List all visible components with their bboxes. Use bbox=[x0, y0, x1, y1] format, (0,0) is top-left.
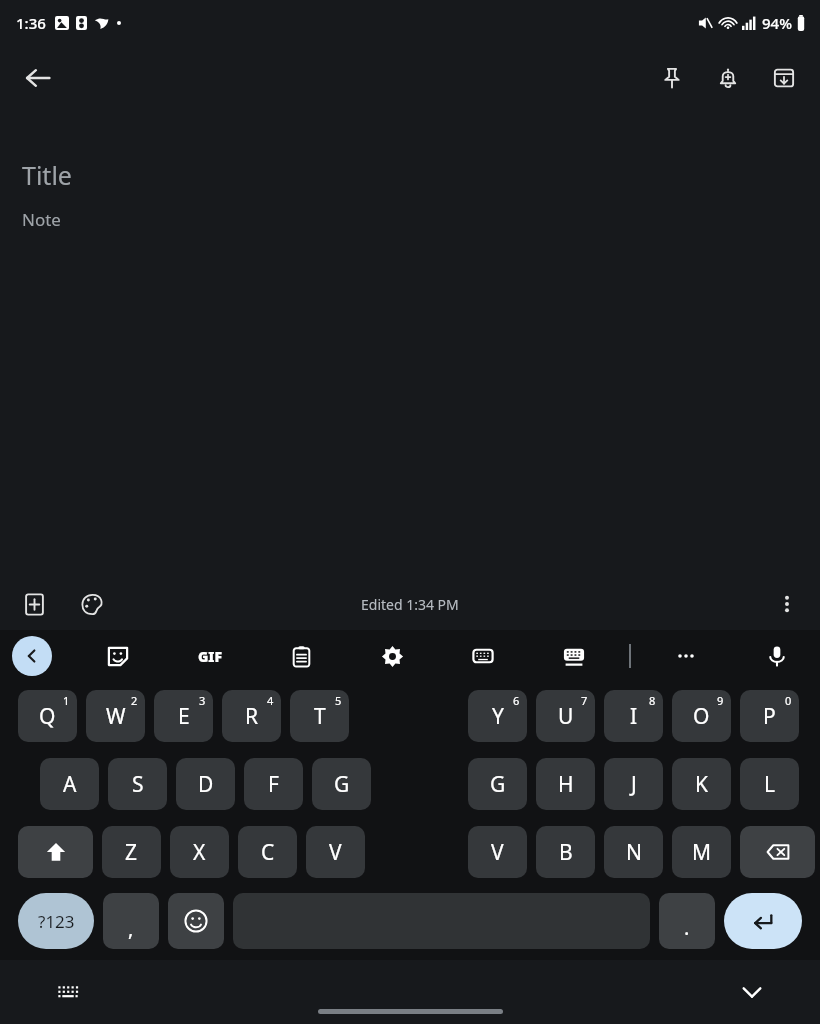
button[interactable]: G bbox=[312, 758, 371, 810]
button[interactable]: Stickers bbox=[96, 634, 140, 678]
staticText: 2 bbox=[131, 693, 138, 708]
staticText: 1 bbox=[63, 693, 70, 708]
staticText: Title bbox=[22, 158, 72, 192]
button[interactable]: N bbox=[604, 826, 663, 878]
staticText: 7 bbox=[581, 693, 588, 708]
button[interactable]: Backspace bbox=[740, 826, 815, 878]
button[interactable]: Z bbox=[102, 826, 161, 878]
button[interactable]: O bbox=[672, 690, 731, 742]
staticText: F bbox=[268, 770, 279, 799]
button[interactable]: W bbox=[86, 690, 145, 742]
staticText: D bbox=[198, 770, 214, 799]
button[interactable]: E bbox=[154, 690, 213, 742]
staticText: A bbox=[63, 770, 77, 799]
button[interactable]: Color palette bbox=[72, 584, 112, 624]
button[interactable]: L bbox=[740, 758, 799, 810]
staticText: U bbox=[558, 702, 574, 731]
staticText: 6 bbox=[513, 693, 520, 708]
staticText: I bbox=[630, 702, 638, 731]
button[interactable]: R bbox=[222, 690, 281, 742]
staticText: 5 bbox=[335, 693, 342, 708]
staticText: 8 bbox=[649, 693, 656, 708]
staticText: T bbox=[314, 702, 326, 731]
button[interactable]: U bbox=[536, 690, 595, 742]
staticText: V bbox=[491, 838, 504, 867]
staticText: J bbox=[631, 770, 637, 799]
button[interactable]: ?123 bbox=[18, 893, 94, 949]
staticText: E bbox=[178, 702, 190, 731]
button[interactable]: Back bbox=[14, 54, 62, 102]
button[interactable]: V bbox=[468, 826, 527, 878]
button[interactable]: P bbox=[740, 690, 799, 742]
button[interactable]: Switch keyboard bbox=[48, 972, 88, 1012]
button[interactable]: X bbox=[170, 826, 229, 878]
staticText: 4 bbox=[267, 693, 274, 708]
button[interactable]: Y bbox=[468, 690, 527, 742]
button[interactable]: One-handed mode bbox=[461, 634, 505, 678]
button[interactable]: Q bbox=[18, 690, 77, 742]
button[interactable]: K bbox=[672, 758, 731, 810]
staticText: O bbox=[693, 702, 710, 731]
staticText: 0 bbox=[785, 693, 792, 708]
button[interactable]: More options bbox=[766, 583, 808, 625]
staticText: C bbox=[261, 838, 275, 867]
staticText: W bbox=[106, 702, 126, 731]
staticText: X bbox=[193, 838, 206, 867]
button[interactable]: Add bbox=[14, 584, 54, 624]
staticText: S bbox=[132, 770, 144, 799]
button[interactable]: Emoji bbox=[168, 893, 224, 949]
button[interactable]: V bbox=[306, 826, 365, 878]
staticText: , bbox=[128, 915, 134, 942]
button[interactable]: M bbox=[672, 826, 731, 878]
staticText: N bbox=[626, 838, 642, 867]
button[interactable]: More bbox=[664, 634, 708, 678]
button[interactable]: I bbox=[604, 690, 663, 742]
button[interactable]: F bbox=[244, 758, 303, 810]
button[interactable]: Pin bbox=[650, 56, 694, 100]
staticText: G bbox=[334, 770, 350, 799]
staticText: 94% bbox=[762, 13, 792, 33]
button[interactable]: C bbox=[238, 826, 297, 878]
staticText: K bbox=[695, 770, 708, 799]
staticText: H bbox=[558, 770, 574, 799]
staticText: Edited 1:34 PM bbox=[361, 595, 459, 614]
button[interactable]: Expand toolbar bbox=[12, 636, 52, 676]
button[interactable]: B bbox=[536, 826, 595, 878]
staticText: G bbox=[490, 770, 506, 799]
staticText: P bbox=[763, 702, 776, 731]
staticText: Y bbox=[492, 702, 504, 731]
staticText: 9 bbox=[717, 693, 724, 708]
staticText: Z bbox=[125, 838, 138, 867]
staticText: 1:36 bbox=[16, 13, 46, 33]
staticText: 3 bbox=[199, 693, 206, 708]
button[interactable]: S bbox=[108, 758, 167, 810]
staticText: B bbox=[559, 838, 573, 867]
button[interactable]: , bbox=[103, 893, 159, 949]
button[interactable]: . bbox=[659, 893, 715, 949]
button[interactable]: Archive bbox=[762, 56, 806, 100]
staticText: GIF bbox=[198, 647, 223, 666]
staticText: Note bbox=[22, 208, 61, 231]
button[interactable]: A bbox=[40, 758, 99, 810]
button[interactable]: Floating keyboard bbox=[552, 634, 596, 678]
button[interactable]: Reminder bbox=[706, 56, 750, 100]
staticText: . bbox=[684, 914, 690, 941]
button[interactable]: Shift bbox=[18, 826, 93, 878]
button[interactable]: GIF bbox=[188, 634, 232, 678]
staticText: ?123 bbox=[38, 910, 75, 933]
button[interactable]: D bbox=[176, 758, 235, 810]
button[interactable]: Hide keyboard bbox=[732, 972, 772, 1012]
button[interactable]: T bbox=[290, 690, 349, 742]
button[interactable]: G bbox=[468, 758, 527, 810]
button[interactable]: J bbox=[604, 758, 663, 810]
button[interactable]: H bbox=[536, 758, 595, 810]
button[interactable]: Clipboard bbox=[279, 634, 323, 678]
staticText: L bbox=[764, 770, 776, 799]
button[interactable]: Voice input bbox=[755, 634, 799, 678]
button[interactable]: Settings bbox=[370, 634, 414, 678]
button[interactable]: Enter bbox=[724, 893, 802, 949]
staticText: R bbox=[245, 702, 259, 731]
staticText: Q bbox=[39, 702, 56, 731]
staticText: V bbox=[329, 838, 342, 867]
